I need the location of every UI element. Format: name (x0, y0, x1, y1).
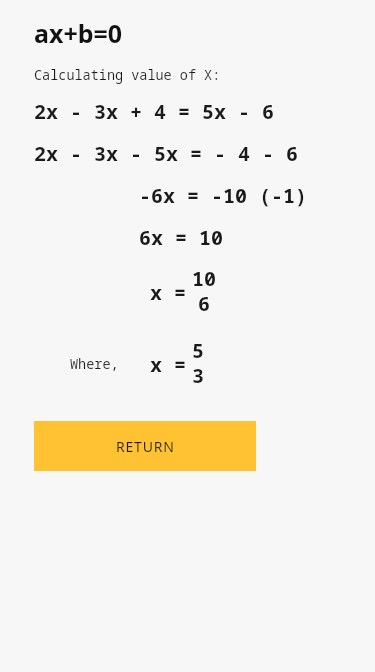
button[interactable]: RETURN (34, 421, 256, 471)
staticText: 6 (198, 290, 210, 317)
staticText: 10 (192, 265, 216, 292)
staticText: 2x - 3x + 4 = 5x - 6 (34, 98, 274, 125)
staticText: -6x = -10 (-1) (139, 182, 307, 209)
staticText: Where, (70, 355, 119, 373)
staticText: 3 (192, 362, 204, 389)
staticText: 6x = 10 (139, 224, 223, 251)
staticText: x = (150, 279, 186, 306)
staticText: 5 (192, 337, 204, 364)
staticText: RETURN (116, 437, 175, 456)
staticText: x = (150, 351, 186, 378)
staticText: ax+b=0 (34, 16, 123, 50)
staticText: 2x - 3x - 5x = - 4 - 6 (34, 140, 298, 167)
staticText: Calculating value of X: (34, 66, 221, 84)
